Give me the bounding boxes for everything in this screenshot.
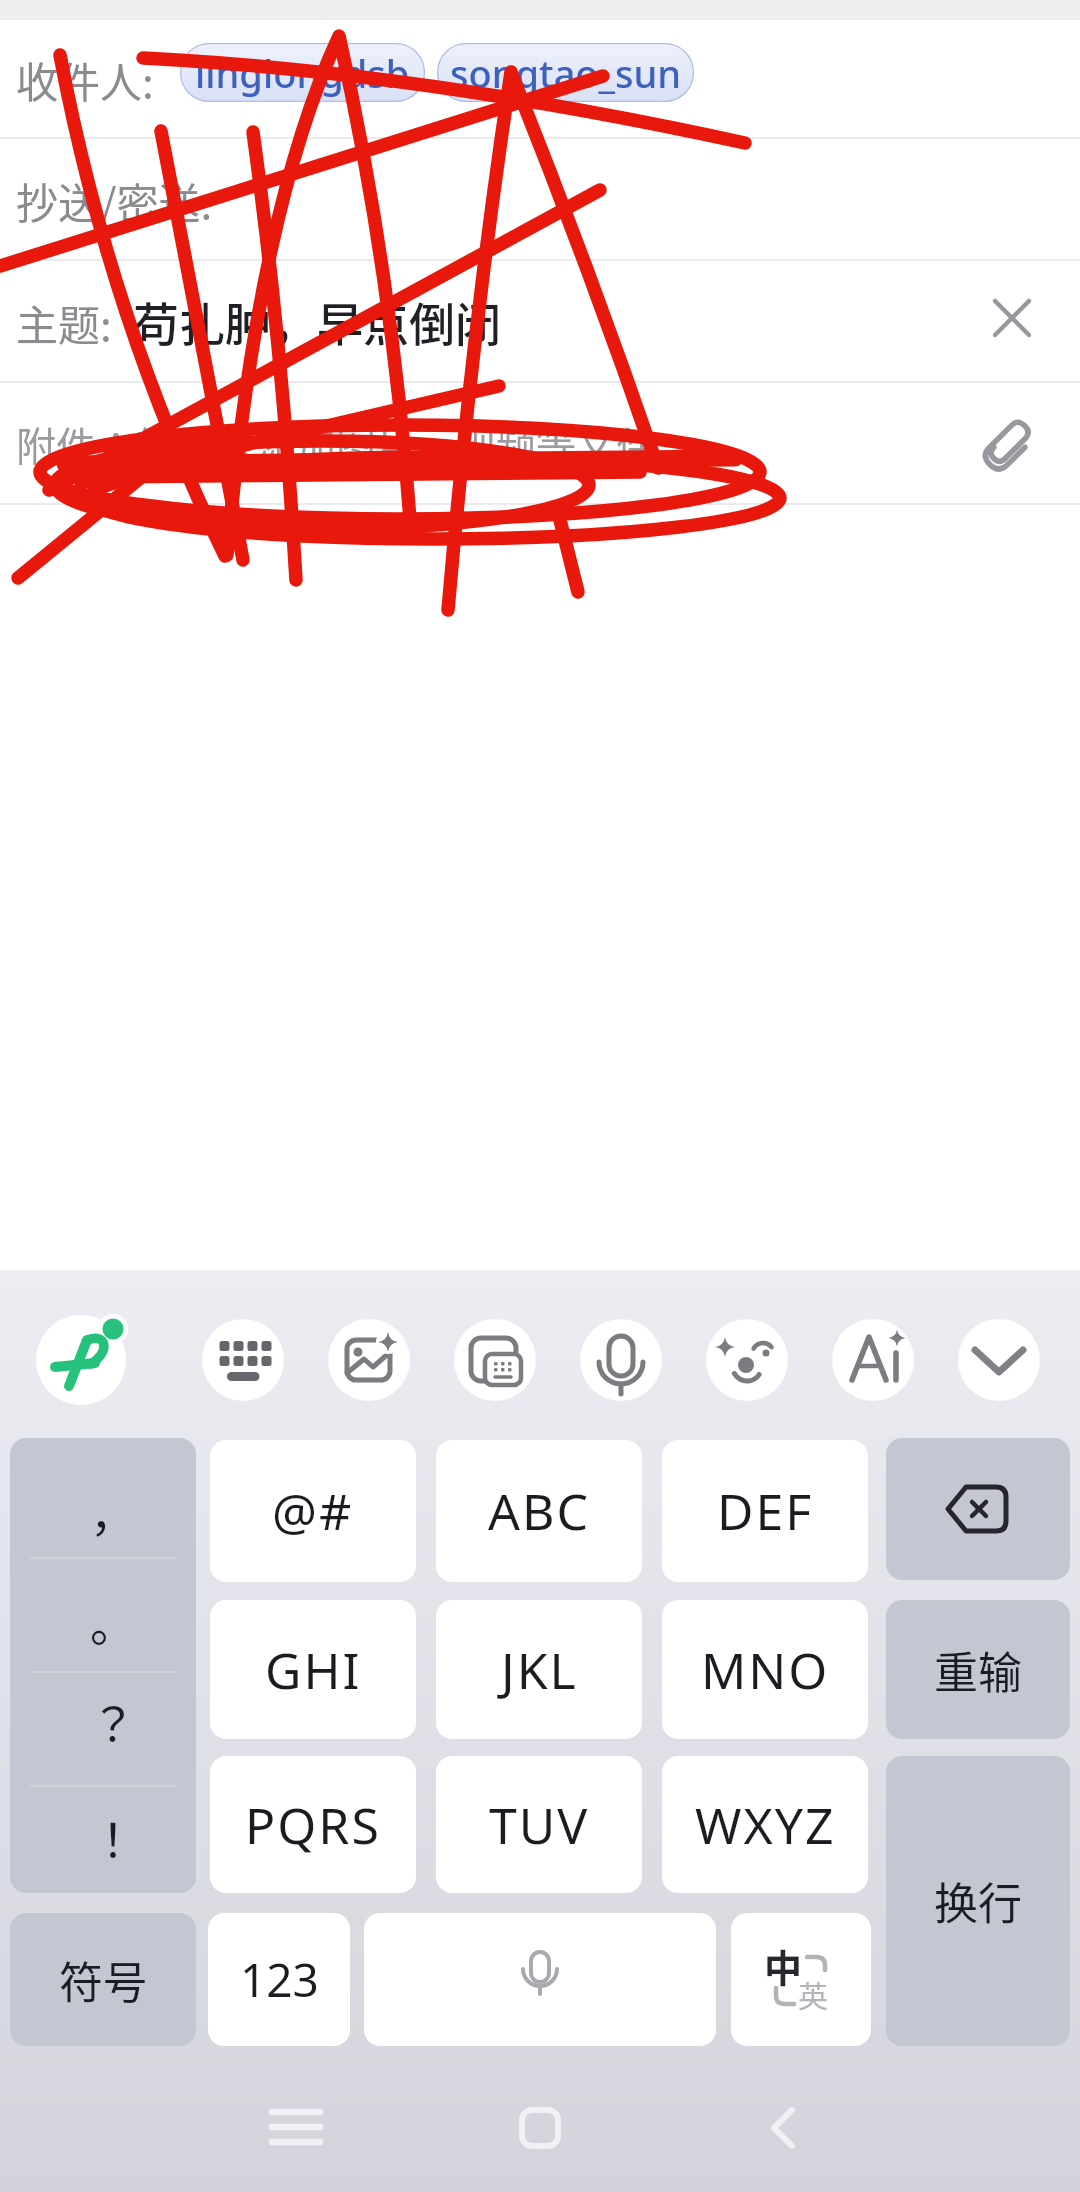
- button[interactable]: [832, 1319, 914, 1401]
- button[interactable]: [958, 1319, 1040, 1401]
- button[interactable]: DEF: [662, 1440, 868, 1582]
- staticText: 换行: [934, 1869, 1022, 1933]
- staticText: DEF: [717, 1477, 814, 1545]
- staticText: songtao_sun: [450, 47, 682, 99]
- button[interactable]: [202, 1319, 284, 1401]
- staticText: @#: [272, 1477, 354, 1545]
- button[interactable]: MNO: [662, 1600, 868, 1739]
- button[interactable]: [580, 1319, 662, 1401]
- staticText: GHI: [265, 1636, 362, 1704]
- staticText: 英: [798, 1972, 828, 2015]
- staticText: ，: [90, 1478, 136, 1545]
- staticText: 附件：轻触以添加图片、视频等文件: [16, 415, 656, 473]
- staticText: JKL: [501, 1636, 578, 1704]
- staticText: 中: [764, 1938, 803, 1993]
- button[interactable]: ，: [10, 1438, 196, 1893]
- button[interactable]: [731, 1913, 871, 2046]
- staticText: 重输: [934, 1638, 1022, 1702]
- button[interactable]: [256, 2088, 336, 2168]
- staticText: ？: [90, 1688, 136, 1755]
- button[interactable]: songtao_sun: [437, 43, 694, 102]
- button[interactable]: [975, 410, 1041, 476]
- button[interactable]: [328, 1319, 410, 1401]
- staticText: 符号: [59, 1948, 147, 2012]
- staticText: PQRS: [245, 1791, 381, 1859]
- button[interactable]: @#: [210, 1440, 416, 1582]
- button[interactable]: 重输: [886, 1600, 1070, 1739]
- button[interactable]: 换行: [886, 1756, 1070, 2046]
- button[interactable]: JKL: [436, 1600, 642, 1739]
- staticText: 123: [240, 1948, 319, 2011]
- button[interactable]: [706, 1319, 788, 1401]
- staticText: 收件人:: [16, 49, 154, 110]
- button[interactable]: 符号: [10, 1913, 196, 2046]
- staticText: linglongdsb: [195, 47, 410, 99]
- button[interactable]: GHI: [210, 1600, 416, 1739]
- staticText: MNO: [701, 1636, 830, 1704]
- button[interactable]: [985, 291, 1039, 345]
- staticText: 。: [90, 1588, 136, 1655]
- staticText: ABC: [488, 1477, 591, 1545]
- button[interactable]: [36, 1315, 126, 1405]
- button[interactable]: [744, 2088, 824, 2168]
- staticText: ！: [90, 1804, 136, 1871]
- button[interactable]: ABC: [436, 1440, 642, 1582]
- button[interactable]: TUV: [436, 1756, 642, 1893]
- button[interactable]: PQRS: [210, 1756, 416, 1893]
- button[interactable]: [364, 1913, 716, 2046]
- button[interactable]: WXYZ: [662, 1756, 868, 1893]
- button[interactable]: [886, 1438, 1070, 1580]
- staticText: 苟扎肿，早点倒闭: [133, 288, 501, 355]
- button[interactable]: linglongdsb: [180, 43, 425, 102]
- staticText: TUV: [489, 1791, 590, 1859]
- staticText: WXYZ: [695, 1791, 836, 1859]
- button[interactable]: [454, 1319, 536, 1401]
- button[interactable]: 123: [208, 1913, 350, 2046]
- button[interactable]: [500, 2088, 580, 2168]
- staticText: 主题:: [16, 292, 112, 353]
- staticText: 抄送/密送:: [16, 170, 213, 231]
